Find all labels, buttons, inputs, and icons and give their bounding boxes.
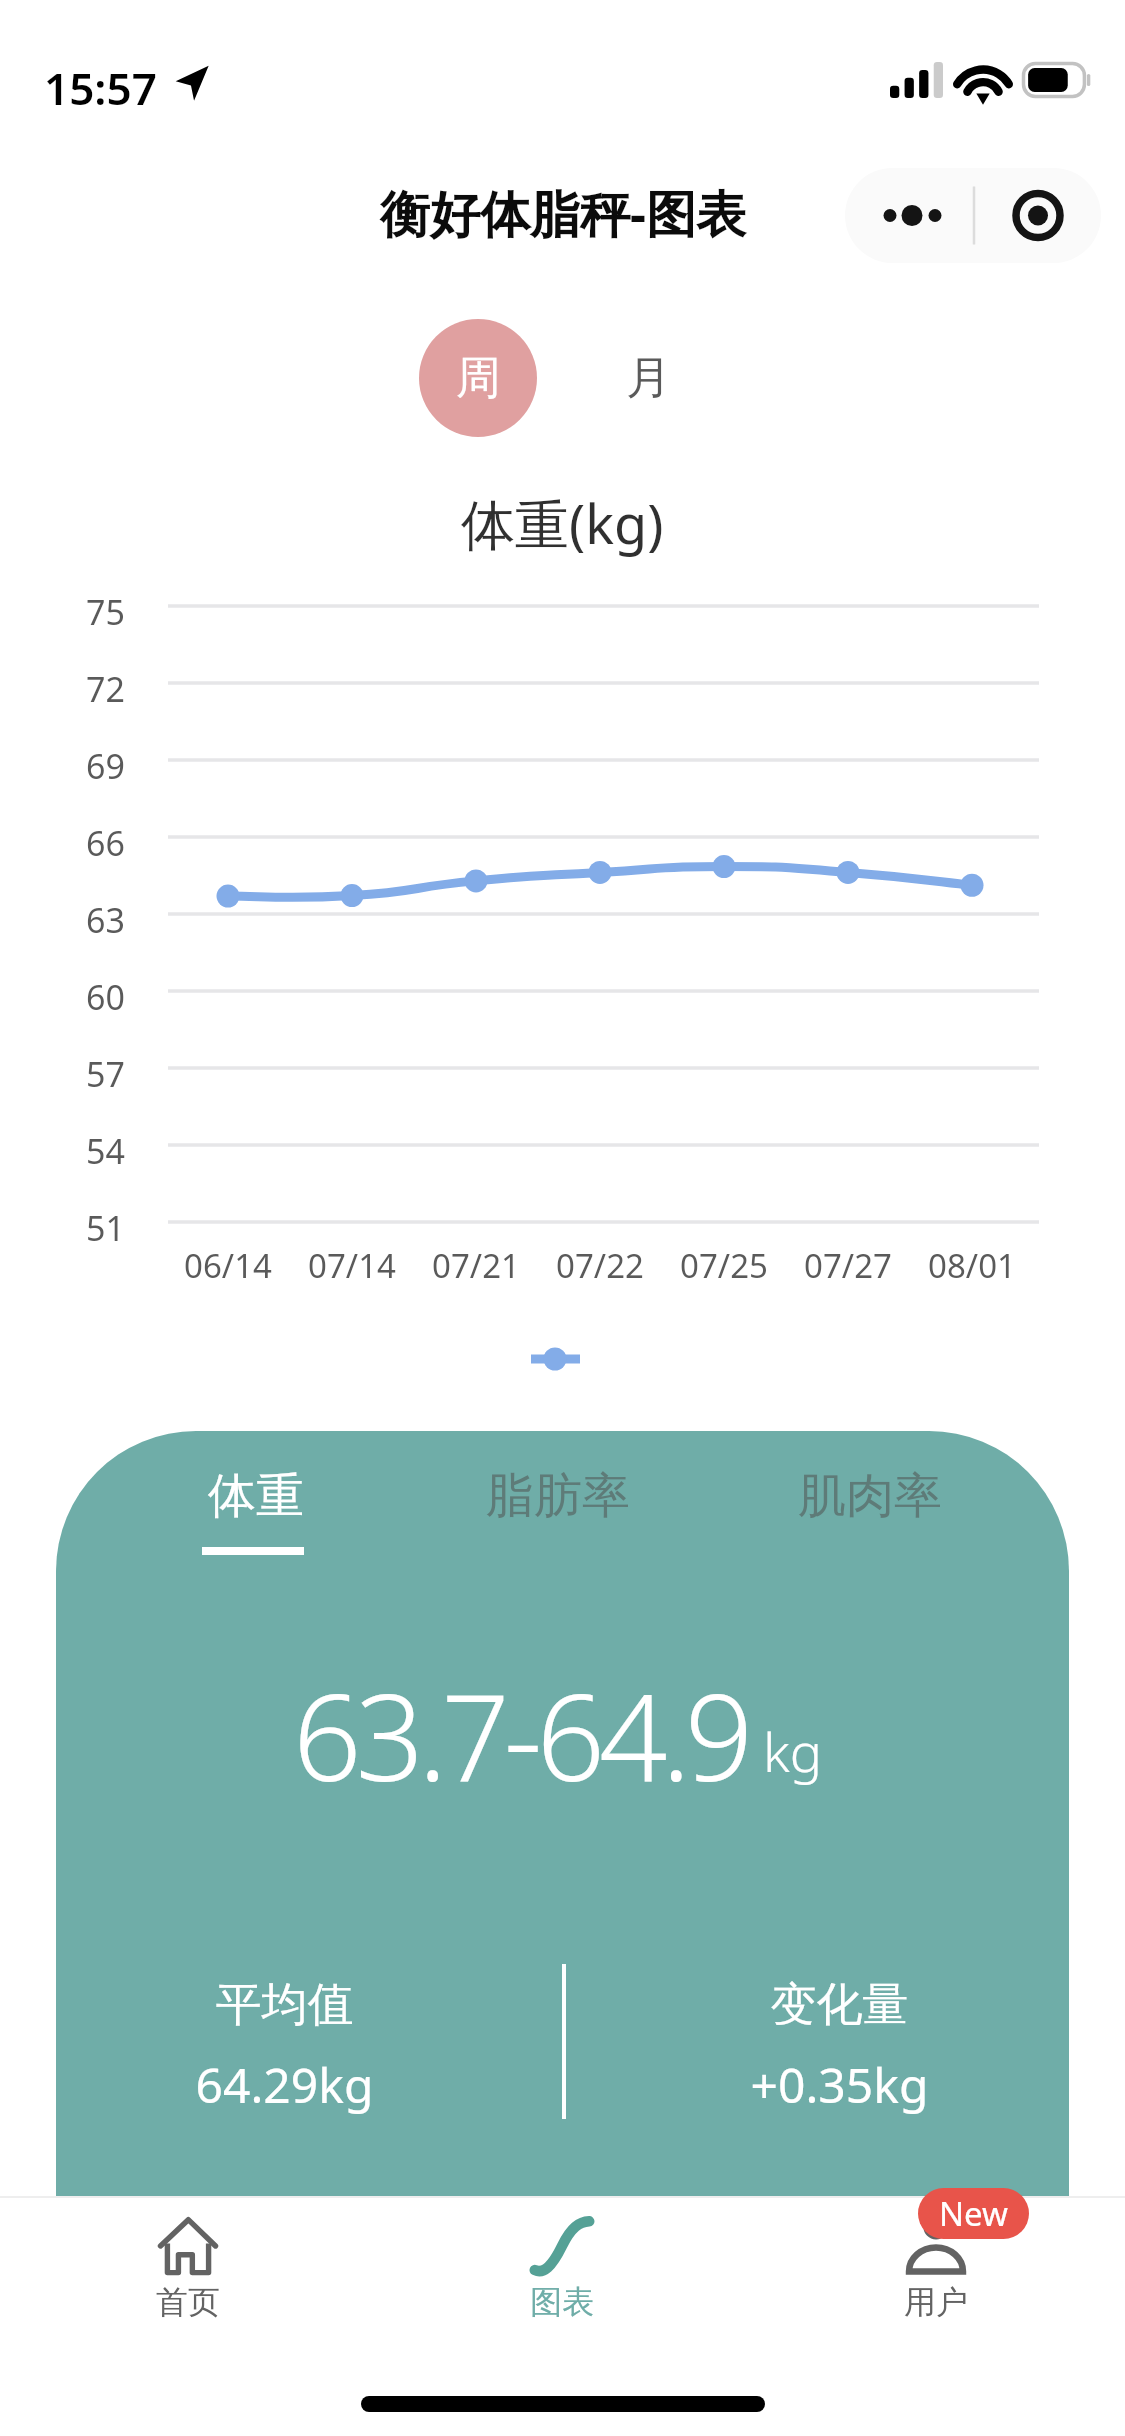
staticText: 首页 — [156, 2282, 220, 2322]
staticText: 54 — [86, 1128, 125, 1174]
staticText: 图表 — [530, 2282, 594, 2322]
staticText: 用户 — [904, 2282, 968, 2322]
staticText: 周 — [456, 350, 501, 407]
staticText: 51 — [86, 1205, 125, 1251]
staticText: 60 — [86, 974, 125, 1020]
staticText: 月 — [626, 350, 671, 407]
button[interactable]: 脂肪率 — [466, 1445, 694, 1575]
staticText: 脂肪率 — [486, 1466, 630, 1526]
staticText: 08/01 — [928, 1243, 1016, 1288]
button[interactable]: More options — [845, 168, 1101, 263]
staticText: +0.35kg — [627, 2052, 1052, 2117]
button[interactable]: 平均值 — [72, 1950, 497, 2130]
staticText: 63.7-64.9 — [293, 1653, 748, 1816]
staticText: New — [939, 2191, 1008, 2236]
staticText: 平均值 — [72, 1976, 497, 2034]
button[interactable]: 周 — [419, 319, 537, 437]
staticText: 07/22 — [556, 1243, 644, 1288]
staticText: 69 — [86, 743, 125, 789]
staticText: 07/25 — [680, 1243, 768, 1288]
staticText: 肌肉率 — [798, 1466, 942, 1526]
staticText: 07/27 — [804, 1243, 892, 1288]
staticText: 57 — [86, 1051, 125, 1097]
staticText: 75 — [86, 589, 125, 635]
staticText: 63 — [86, 897, 125, 943]
staticText: 66 — [86, 820, 125, 866]
staticText: 72 — [86, 666, 125, 712]
button[interactable]: 肌肉率 — [778, 1445, 1006, 1575]
button[interactable]: 月 — [589, 319, 707, 437]
button[interactable]: Profile — [811, 2204, 1061, 2334]
staticText: 07/14 — [308, 1243, 396, 1288]
button[interactable]: 体重 — [188, 1445, 416, 1575]
button[interactable]: Chart — [437, 2204, 687, 2334]
button[interactable]: Home — [63, 2204, 313, 2334]
staticText: 衡好体脂秤-图表 — [380, 179, 746, 247]
staticText: 15:57 — [44, 58, 157, 118]
button[interactable]: 变化量 — [627, 1950, 1052, 2130]
staticText: 体重 — [208, 1466, 304, 1526]
staticText: 64.29kg — [72, 2052, 497, 2117]
staticText: 07/21 — [432, 1243, 520, 1288]
staticText: 变化量 — [627, 1976, 1052, 2034]
staticText: 体重(kg) — [461, 486, 664, 560]
staticText: 06/14 — [184, 1243, 272, 1288]
staticText: kg — [763, 1714, 823, 1788]
